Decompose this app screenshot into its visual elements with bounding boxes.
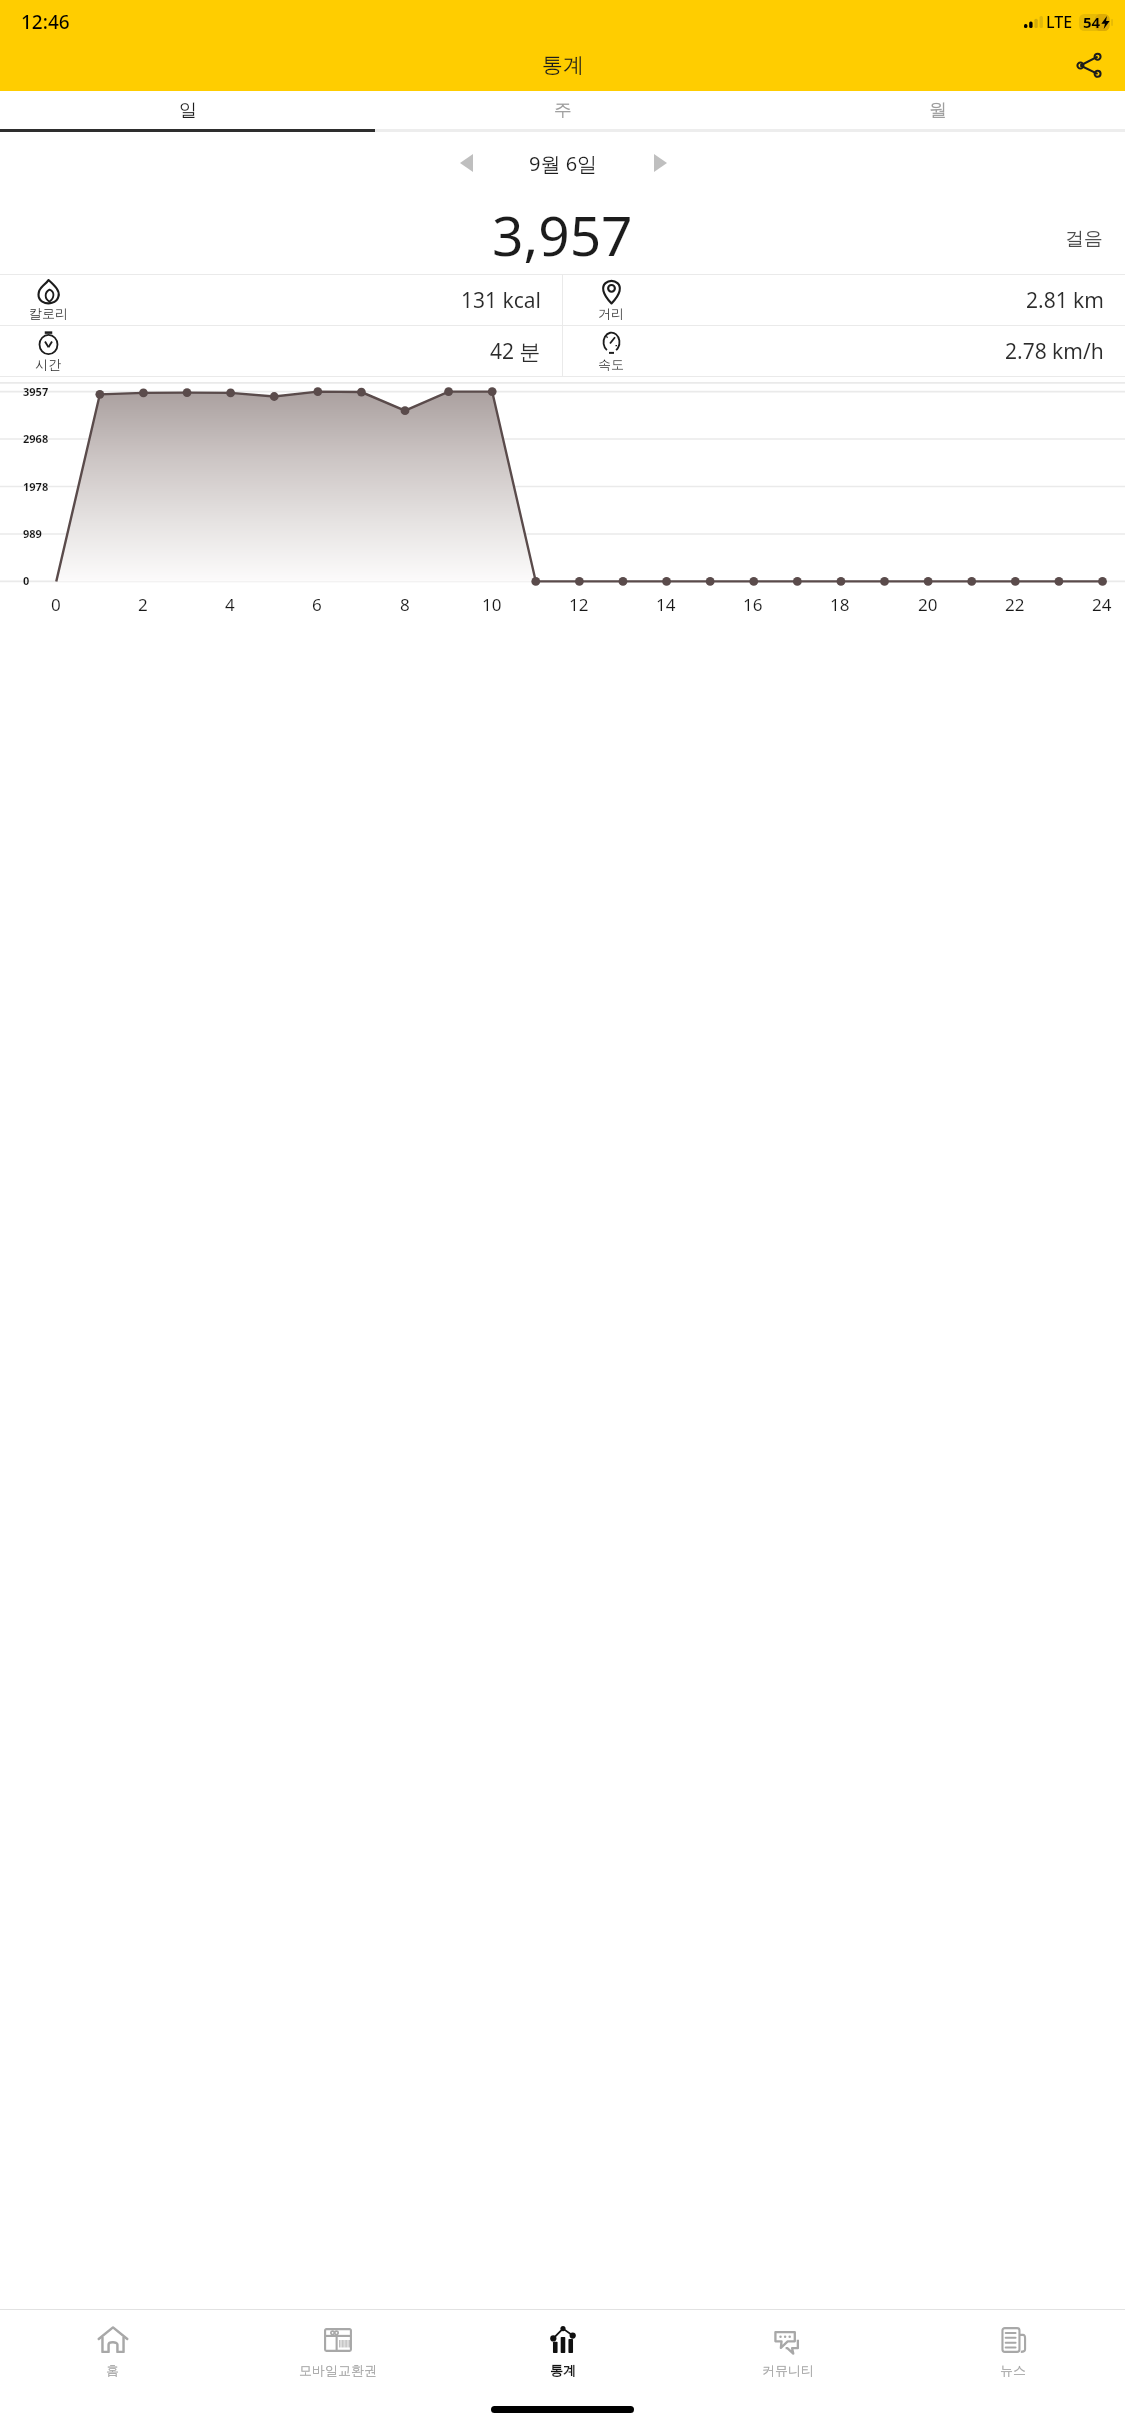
staticText: 2.78 km/h xyxy=(1005,337,1104,366)
staticText: 일 xyxy=(179,99,197,122)
staticText: LTE xyxy=(1046,11,1073,33)
staticText: 6 xyxy=(312,593,322,616)
button[interactable]: 모바일교환권 xyxy=(225,2310,450,2390)
staticText: 모바일교환권 xyxy=(299,2362,377,2378)
staticText: 뉴스 xyxy=(1000,2362,1026,2378)
staticText: 12:46 xyxy=(21,9,70,35)
staticText: 통계 xyxy=(542,52,584,78)
button[interactable]: 커뮤니티 xyxy=(675,2310,900,2390)
staticText: 989 xyxy=(23,526,42,541)
staticText: 속도 xyxy=(598,356,624,372)
staticText: 시간 xyxy=(35,356,61,372)
staticText: 2 xyxy=(138,593,148,616)
staticText: 걸음 xyxy=(1065,227,1103,251)
button[interactable]: 속도 xyxy=(563,326,1125,376)
staticText: 18 xyxy=(830,593,850,616)
staticText: 칼로리 xyxy=(29,305,68,321)
button[interactable]: 일 xyxy=(0,91,375,129)
staticText: 월 xyxy=(929,99,947,122)
button[interactable]: Share xyxy=(1066,42,1112,88)
staticText: 3957 xyxy=(23,384,49,399)
staticText: 131 kcal xyxy=(461,286,541,315)
staticText: 0 xyxy=(23,573,30,588)
button[interactable]: Previous day xyxy=(445,142,487,184)
staticText: 12 xyxy=(569,593,589,616)
staticText: 0 xyxy=(51,593,61,616)
staticText: 4 xyxy=(225,593,235,616)
staticText: 커뮤니티 xyxy=(762,2362,814,2378)
button[interactable]: 시간 xyxy=(0,326,562,376)
staticText: 1978 xyxy=(23,479,49,494)
staticText: 22 xyxy=(1005,593,1025,616)
staticText: 주 xyxy=(554,99,572,122)
button[interactable]: 거리 xyxy=(563,275,1125,325)
button[interactable]: 통계 xyxy=(450,2310,675,2390)
staticText: 통계 xyxy=(550,2362,576,2378)
button[interactable]: 칼로리 xyxy=(0,275,562,325)
button[interactable]: 주 xyxy=(375,91,750,129)
staticText: 20 xyxy=(918,593,938,616)
staticText: 2.81 km xyxy=(1026,286,1104,315)
staticText: 14 xyxy=(656,593,676,616)
staticText: 9월 6일 xyxy=(529,150,598,177)
button[interactable]: 홈 xyxy=(0,2310,225,2390)
button[interactable]: 뉴스 xyxy=(900,2310,1125,2390)
button[interactable]: Next day xyxy=(639,142,681,184)
staticText: 3,957 xyxy=(492,197,633,272)
staticText: 8 xyxy=(400,593,410,616)
staticText: 24 xyxy=(1092,593,1112,616)
staticText: 거리 xyxy=(598,305,624,321)
staticText: 2968 xyxy=(23,431,49,446)
button[interactable]: 월 xyxy=(750,91,1125,129)
staticText: 10 xyxy=(482,593,502,616)
staticText: 홈 xyxy=(106,2362,119,2378)
staticText: 16 xyxy=(743,593,763,616)
staticText: 42 분 xyxy=(490,337,541,366)
staticText: 54 xyxy=(1083,12,1101,32)
